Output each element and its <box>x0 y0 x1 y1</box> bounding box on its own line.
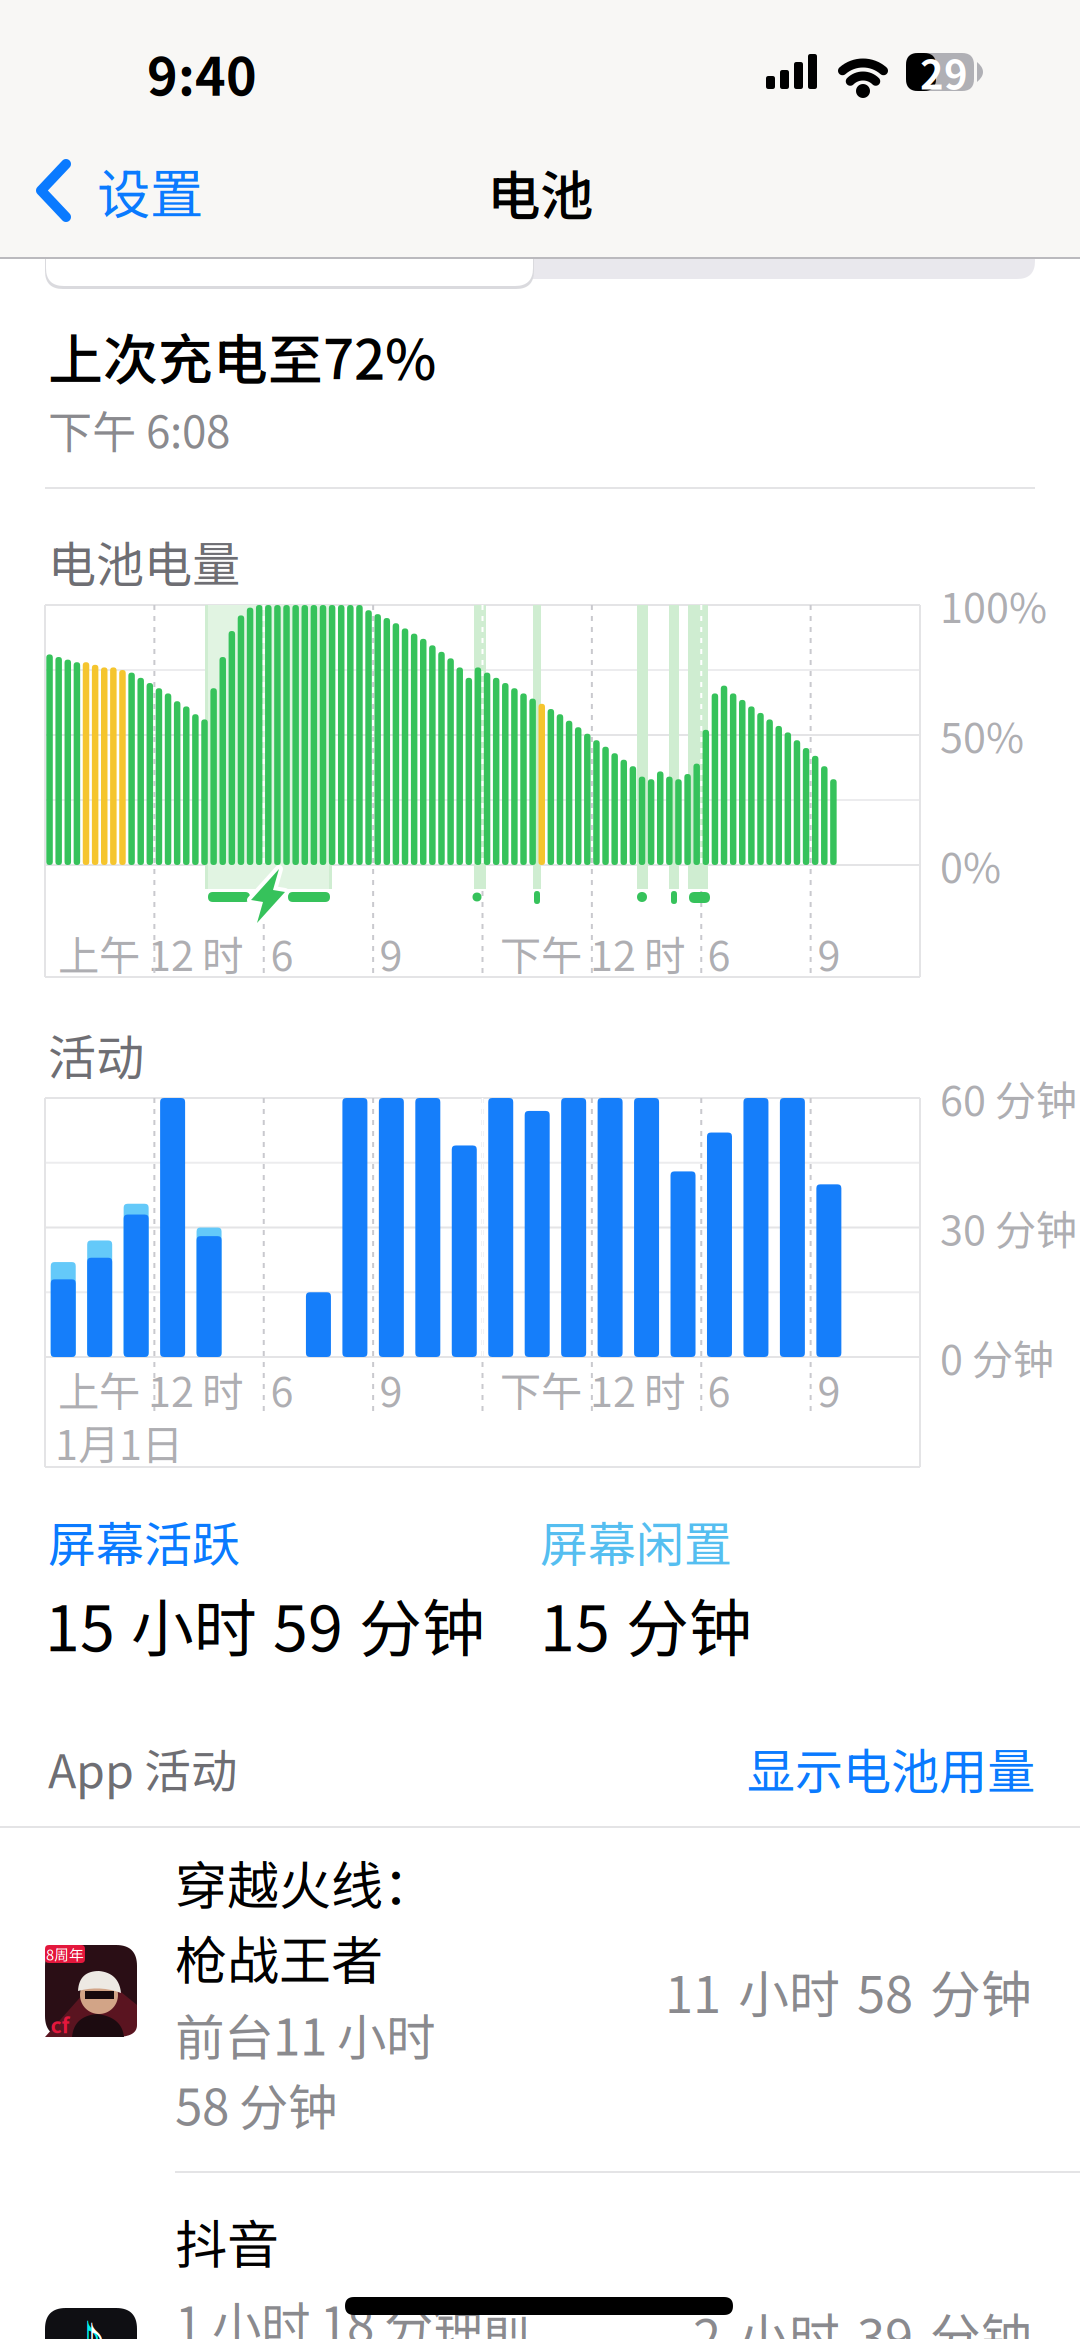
staticText: 穿越火线： <box>175 1844 435 1920</box>
staticText: 60 分钟 <box>940 1068 1077 1128</box>
staticText: ♪ <box>72 2309 112 2339</box>
staticText: 58 分钟 <box>175 2068 337 2140</box>
button[interactable]: 返回设置 <box>0 140 230 250</box>
staticText: 6 <box>270 923 293 983</box>
staticText: 活动 <box>48 1019 144 1089</box>
staticText: 设置 <box>97 152 203 229</box>
staticText: 0% <box>940 835 1001 895</box>
staticText: 15 小时 59 分钟 <box>45 1579 485 1669</box>
button[interactable]: 抖音 <box>0 2173 1080 2339</box>
staticText: 下午 6:08 <box>48 397 230 461</box>
staticText: 电池 <box>487 153 593 231</box>
staticText: 电池电量 <box>48 526 240 596</box>
staticText: 9:40 <box>147 35 257 111</box>
staticText: 6 <box>707 1359 730 1419</box>
staticText: 1月1日 <box>55 1412 183 1472</box>
button[interactable]: 穿越火线：枪战王者 <box>0 1828 1080 2172</box>
staticText: 上午 12 时 <box>58 1359 243 1419</box>
staticText: 8周年 <box>46 1943 84 1965</box>
staticText: 2 小时 39 分钟 <box>693 2297 1032 2339</box>
staticText: App 活动 <box>48 1734 238 1802</box>
staticText: 上午 12 时 <box>58 923 243 983</box>
button[interactable]: 显示电池用量 <box>435 1733 1035 1803</box>
staticText: 0 分钟 <box>940 1327 1054 1387</box>
staticText: 显示电池用量 <box>747 1733 1035 1803</box>
staticText: 9 <box>817 923 840 983</box>
staticText: 屏幕闲置 <box>540 1506 732 1576</box>
button[interactable]: 最近10天 <box>0 0 1080 2339</box>
staticText: ♪ <box>68 2307 108 2339</box>
staticText: 1 小时 18 分钟前 <box>175 2286 531 2339</box>
staticText: 9 <box>817 1359 840 1419</box>
staticText: 6 <box>270 1359 293 1419</box>
staticText: 29 <box>920 43 968 101</box>
staticText: 枪战王者 <box>175 1919 383 1995</box>
staticText: 上次充电至72% <box>48 316 436 396</box>
staticText: 6 <box>707 923 730 983</box>
staticText: 下午 12 时 <box>500 923 685 983</box>
staticText: 30 分钟 <box>940 1198 1077 1257</box>
staticText: 前台11 小时 <box>175 1998 435 2070</box>
staticText: 下午 12 时 <box>500 1359 685 1419</box>
staticText: 15 分钟 <box>540 1579 752 1669</box>
staticText: 11 小时 58 分钟 <box>665 1954 1032 2028</box>
staticText: 抖音 <box>175 2203 279 2279</box>
staticText: 9 <box>379 923 402 983</box>
staticText: 100% <box>940 575 1047 635</box>
button[interactable]: 最近24小时 <box>0 0 1080 2339</box>
staticText: 9 <box>379 1359 402 1419</box>
staticText: cf <box>50 2009 69 2039</box>
staticText: 屏幕活跃 <box>48 1506 240 1576</box>
staticText: 50% <box>940 705 1024 765</box>
